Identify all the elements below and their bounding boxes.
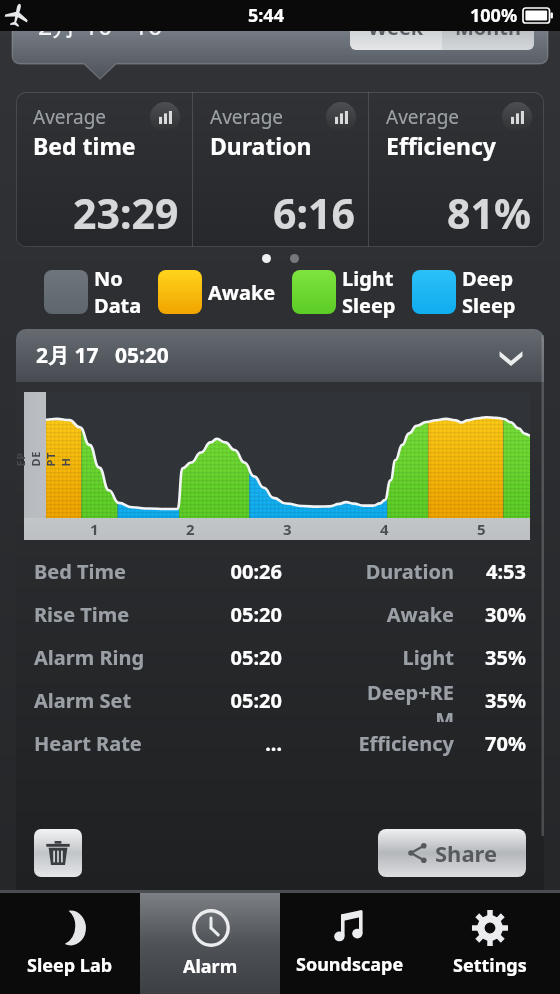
button[interactable]: Average [16,92,192,247]
staticText: 2月 10 - 16 [38,8,163,42]
staticText: Efficiency [354,730,454,757]
staticText: 2月 17 05:20 [36,341,169,370]
staticText: Sleep Lab [27,953,113,978]
staticText: Alarm Ring [34,644,182,671]
staticText: Efficiency [386,130,496,161]
staticText: No [94,265,123,292]
staticText: 81% [447,185,531,241]
staticText: 5 [477,519,486,539]
staticText: 30% [466,601,526,628]
staticText: 05:20 [182,601,282,628]
staticText: Deep+REM [354,679,454,722]
staticText: 05:20 [182,644,282,671]
staticText: Deep [462,265,514,292]
staticText: Average [33,104,107,130]
staticText: 1 [90,519,99,539]
staticText: Alarm [183,954,238,979]
button[interactable]: Month [442,4,534,50]
staticText: 23:29 [73,185,179,241]
button[interactable]: Show chart [150,102,180,132]
staticText: Awake [208,279,276,306]
staticText: 100% [470,3,518,28]
button[interactable]: Delete [34,829,82,877]
staticText: Heart Rate [34,730,182,757]
staticText: Average [210,104,284,130]
button[interactable]: Sleep Lab [0,893,140,994]
button[interactable]: Average [193,92,368,247]
staticText: Sleep [462,292,516,319]
staticText: Soundscape [296,952,404,977]
staticText: 5:44 [248,3,284,28]
staticText: Month [455,14,522,41]
staticText: Sleep [342,292,396,319]
button[interactable]: Show chart [326,102,356,132]
staticText: Bed time [33,130,136,161]
staticText: 35% [466,687,526,714]
staticText: 3 [283,519,292,539]
staticText: SLEEP DEPTH [16,444,72,466]
staticText: Awake [354,601,454,628]
staticText: 70% [466,730,526,757]
staticText: ... [182,730,282,757]
button[interactable]: Settings [420,893,560,994]
staticText: Alarm Set [34,687,182,714]
staticText: Light [354,644,454,671]
staticText: Data [94,292,142,319]
button[interactable]: Share [378,829,526,877]
staticText: 05:20 [182,687,282,714]
staticText: Rise Time [34,601,182,628]
staticText: 4:53 [466,558,526,585]
other: Collapse [498,343,524,369]
button[interactable]: Show chart [502,102,532,132]
staticText: Share [435,838,498,868]
button[interactable]: 2月 17 05:20 [16,329,544,382]
staticText: 35% [466,644,526,671]
staticText: 6:16 [273,185,355,241]
staticText: Bed Time [34,558,182,585]
button[interactable]: Week [350,4,442,50]
button[interactable]: Soundscape [280,893,420,994]
button[interactable]: Average [369,92,544,247]
staticText: 2 [186,519,195,539]
staticText: 00:26 [182,558,282,585]
staticText: Week [368,14,424,41]
button[interactable]: Alarm [140,893,280,994]
staticText: Light [342,265,394,292]
staticText: 4 [380,519,389,539]
staticText: Duration [210,130,312,161]
staticText: Settings [453,953,527,978]
staticText: Average [386,104,460,130]
staticText: Duration [354,558,454,585]
